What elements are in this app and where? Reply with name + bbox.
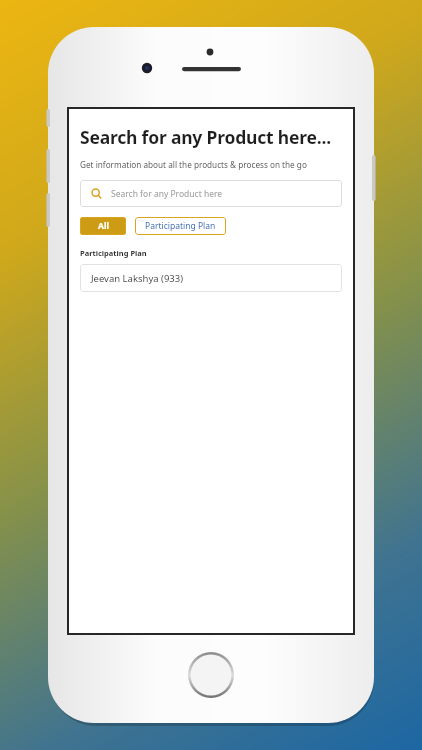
button[interactable]: All [80,217,126,235]
staticText: Participating Plan [145,220,216,232]
staticText: Search for any Product here... [80,125,331,149]
staticText: Get information about all the products &… [80,159,307,170]
button[interactable]: Jeevan Lakshya (933) [80,264,342,292]
button[interactable]: Search for any Product here [80,180,342,207]
staticText: Participating Plan [80,248,147,258]
staticText: Search for any Product here [111,188,223,200]
staticText: Jeevan Lakshya (933) [91,272,184,285]
button[interactable]: Participating Plan [135,217,226,235]
staticText: All [98,220,109,232]
